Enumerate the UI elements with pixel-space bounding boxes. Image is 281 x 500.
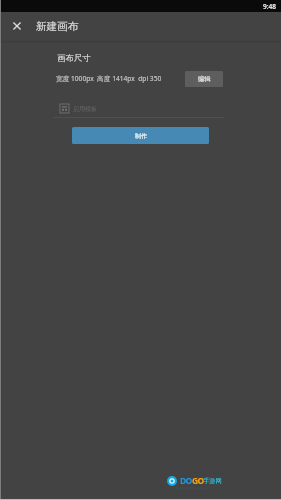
staticText: DO: [180, 475, 192, 487]
staticText: 手游网: [203, 477, 222, 485]
button[interactable]: Close: [4, 14, 29, 39]
staticText: 启用模板: [73, 105, 97, 113]
button[interactable]: 启用模板: [60, 102, 97, 115]
staticText: www.dogame.com.cn: [173, 485, 210, 490]
staticText: 宽度 1000px 高度 1414px dpi 350: [56, 74, 162, 83]
staticText: 画布尺寸: [57, 53, 91, 64]
staticText: GO: [192, 475, 204, 487]
staticText: 编辑: [198, 75, 211, 83]
button[interactable]: DOGO 手游网: [167, 474, 223, 488]
button[interactable]: 制作: [72, 127, 209, 144]
staticText: 新建画布: [36, 20, 78, 33]
button[interactable]: 编辑: [185, 71, 223, 87]
staticText: 9:48: [263, 2, 276, 11]
staticText: 制作: [135, 132, 147, 140]
